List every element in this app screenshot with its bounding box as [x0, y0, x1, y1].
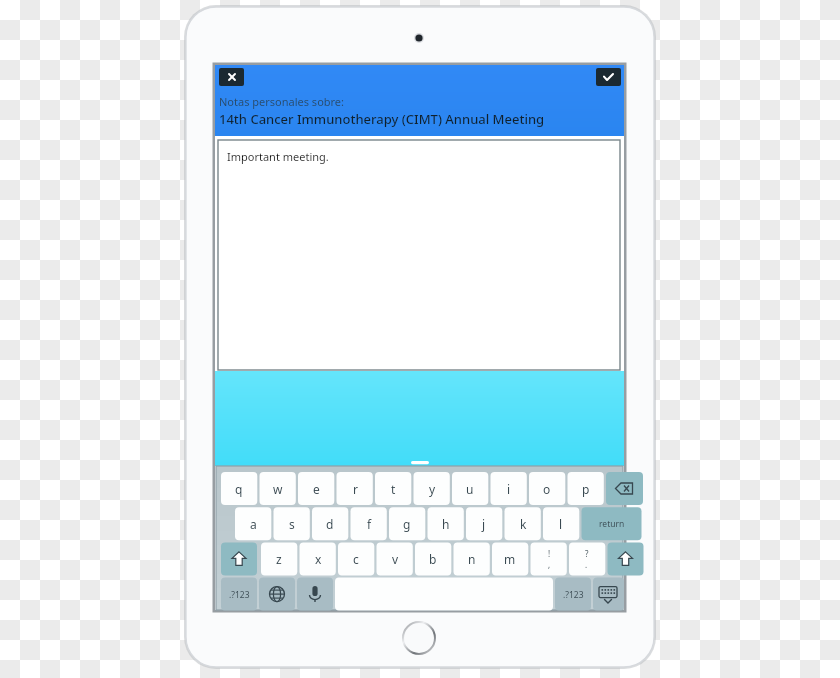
staticText: x [315, 551, 322, 567]
button[interactable]: i [491, 472, 527, 505]
button[interactable]: k [505, 507, 541, 540]
staticText: .?123 [229, 589, 250, 601]
button[interactable]: b [415, 542, 451, 575]
staticText: Important meeting. [227, 149, 329, 164]
staticText: c [353, 551, 359, 567]
button[interactable]: e [298, 472, 334, 505]
staticText: ! , [548, 548, 551, 570]
staticText: s [289, 516, 295, 532]
button[interactable]: .?123 [555, 578, 591, 611]
button[interactable]: m [492, 542, 528, 575]
staticText: n [468, 551, 476, 567]
button[interactable]: Keyboard row [221, 542, 642, 575]
button[interactable]: w [260, 472, 296, 505]
button[interactable]: ! , [531, 542, 567, 575]
staticText: 14th Cancer Immunotherapy (CIMT) Annual … [219, 110, 545, 128]
staticText: g [403, 516, 411, 532]
staticText: z [276, 551, 282, 567]
staticText: e [313, 481, 320, 497]
staticText: ? . [585, 548, 589, 570]
button[interactable]: Keyboard row [221, 472, 677, 505]
staticText: u [466, 481, 474, 497]
staticText: j [482, 516, 486, 532]
button[interactable]: z [261, 542, 297, 575]
staticText: .?123 [563, 589, 584, 601]
button[interactable]: t [375, 472, 411, 505]
staticText: d [326, 516, 334, 532]
button[interactable]: o [529, 472, 565, 505]
button[interactable]: Keyboard row [221, 507, 666, 540]
staticText: Notas personales sobre: [219, 94, 345, 109]
button[interactable]: Keyboard row [221, 578, 624, 611]
button[interactable]: q [221, 472, 257, 505]
button[interactable]: d [312, 507, 348, 540]
staticText: l [559, 516, 563, 532]
staticText: b [429, 551, 437, 567]
staticText: v [392, 551, 399, 567]
button[interactable]: y [414, 472, 450, 505]
button[interactable]: g [389, 507, 425, 540]
button[interactable]: r [337, 472, 373, 505]
button[interactable]: u [452, 472, 488, 505]
button[interactable]: a [235, 507, 271, 540]
button[interactable]: n [454, 542, 490, 575]
button[interactable]: f [351, 507, 387, 540]
button[interactable]: v [377, 542, 413, 575]
button[interactable]: s [274, 507, 310, 540]
staticText: return [599, 518, 625, 530]
button[interactable]: .?123 [221, 578, 257, 611]
staticText: h [442, 516, 450, 532]
button[interactable]: l [543, 507, 579, 540]
staticText: r [353, 481, 358, 497]
staticText: p [582, 481, 590, 497]
button[interactable]: h [428, 507, 464, 540]
button[interactable]: return [582, 507, 642, 540]
staticText: i [507, 481, 511, 497]
button[interactable]: Close [219, 68, 244, 86]
staticText: w [273, 481, 283, 497]
staticText: m [504, 551, 516, 567]
button[interactable] [219, 141, 619, 369]
button[interactable]: j [466, 507, 502, 540]
staticText: k [520, 516, 527, 532]
staticText: o [543, 481, 551, 497]
staticText: f [367, 516, 372, 532]
button[interactable]: Save note [596, 68, 621, 86]
staticText: t [391, 481, 396, 497]
button[interactable]: p [568, 472, 604, 505]
button[interactable]: ? . [569, 542, 605, 575]
staticText: q [235, 481, 243, 497]
staticText: y [429, 481, 436, 497]
staticText: a [250, 516, 257, 532]
button[interactable]: c [338, 542, 374, 575]
button[interactable]: x [300, 542, 336, 575]
